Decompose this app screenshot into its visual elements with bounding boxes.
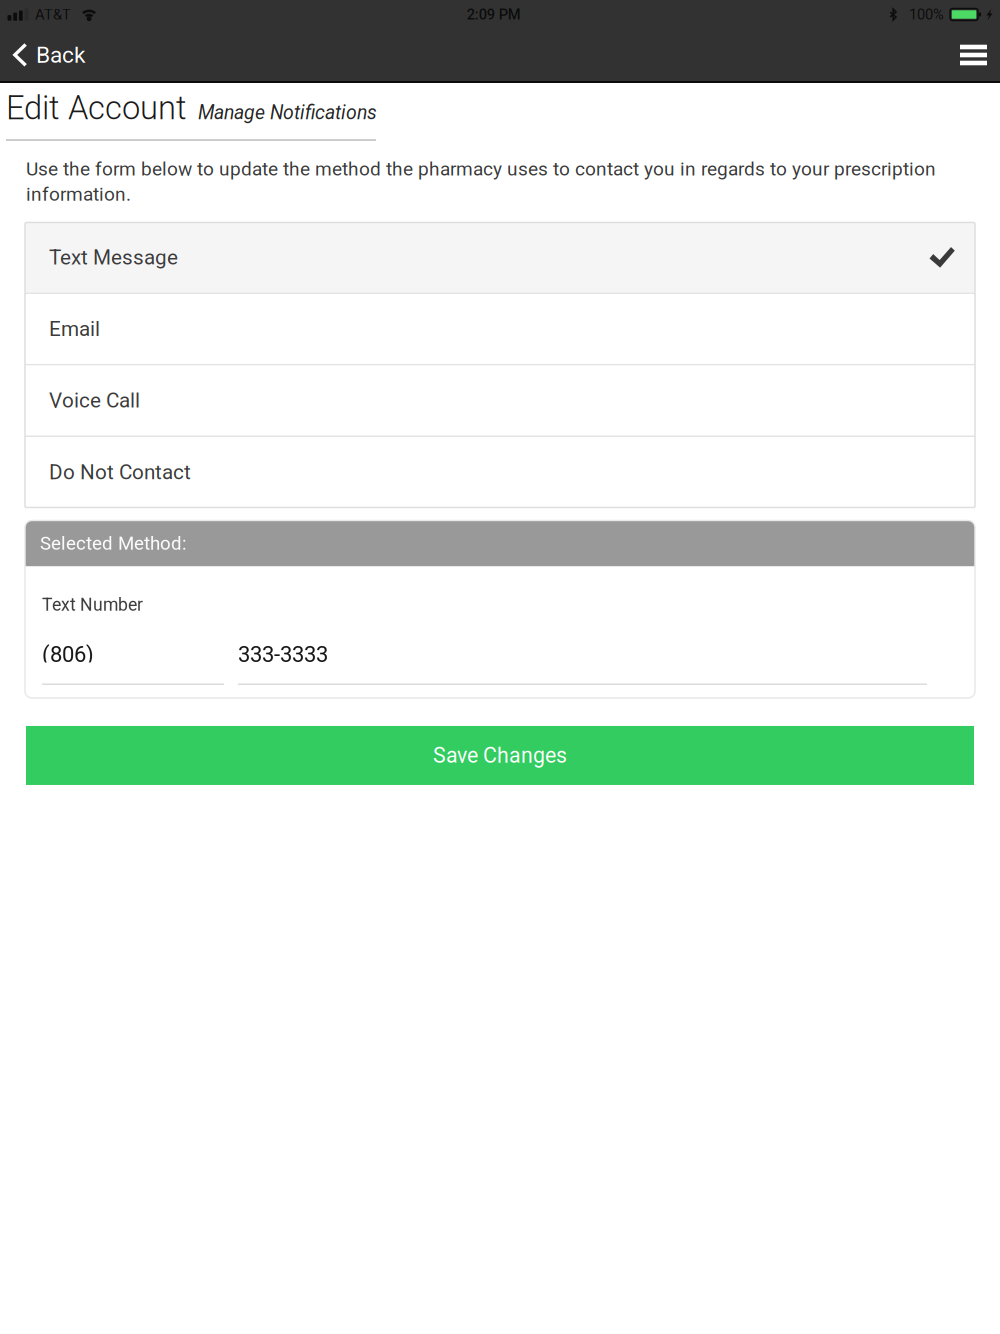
- staticText: Do Not Contact: [49, 460, 191, 484]
- staticText: Use the form below to update the method …: [26, 158, 936, 205]
- staticText: (806): [42, 641, 94, 667]
- staticText: Text Message: [49, 245, 178, 270]
- staticText: Save Changes: [433, 743, 567, 768]
- staticText: Voice Call: [49, 388, 140, 413]
- button[interactable]: Voice Call: [25, 365, 975, 437]
- staticText: 2:09 PM: [467, 6, 521, 23]
- staticText: Email: [49, 317, 100, 341]
- staticText: Edit Account: [6, 89, 187, 127]
- staticText: AT&T: [35, 6, 71, 23]
- staticText: 333-3333: [238, 641, 328, 667]
- button[interactable]: Back: [0, 28, 101, 81]
- button[interactable]: Email: [25, 294, 975, 365]
- staticText: Selected Method:: [40, 532, 187, 554]
- staticText: 100%: [909, 6, 944, 23]
- button[interactable]: Text Message: [25, 222, 975, 294]
- staticText: Manage Notifications: [198, 101, 377, 124]
- button[interactable]: Do Not Contact: [25, 437, 975, 507]
- button[interactable]: Save Changes: [26, 726, 974, 785]
- button[interactable]: Menu: [938, 28, 1000, 81]
- staticText: Text Number: [42, 594, 143, 615]
- staticText: Back: [36, 42, 85, 68]
